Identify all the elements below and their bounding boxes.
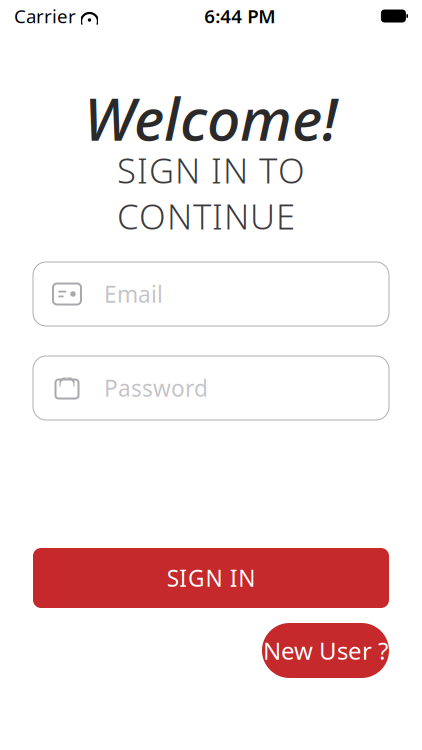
button[interactable]: SIGN IN [33,548,389,608]
button[interactable]: Password [33,356,389,420]
staticText: SIGN IN TO CONTINUE [117,147,305,239]
staticText: SIGN IN [167,563,255,593]
staticText: Welcome! [84,79,338,157]
staticText: New User ? [263,635,388,666]
button[interactable]: Email [33,262,389,326]
staticText: Password [104,373,208,403]
staticText: Carrier [14,4,76,28]
staticText: Email [104,279,163,309]
staticText: 6:44 PM [204,4,275,28]
button[interactable]: New User ? [262,623,389,678]
